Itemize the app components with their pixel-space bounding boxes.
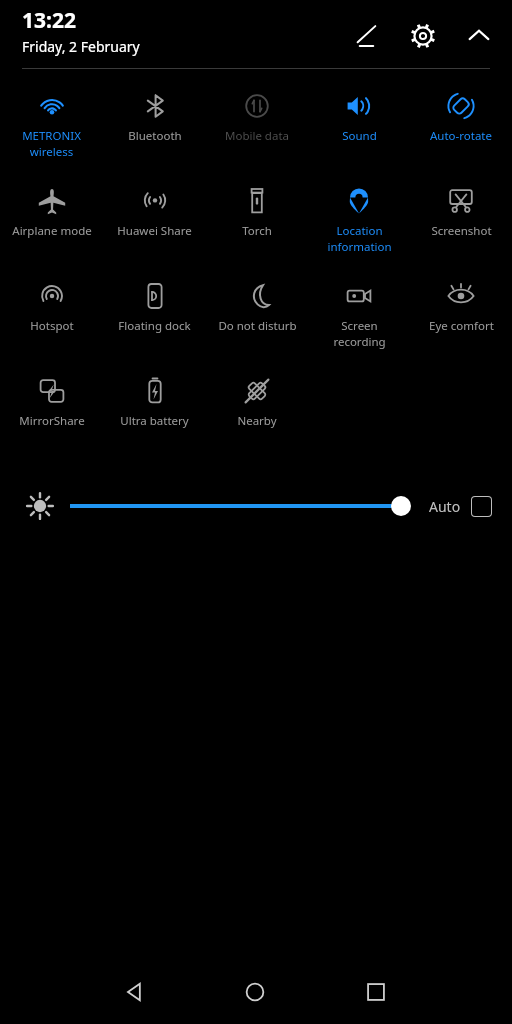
staticText: Auto — [429, 497, 461, 516]
button[interactable]: Home — [227, 964, 283, 1020]
button[interactable]: Auto — [429, 496, 492, 517]
staticText: Auto-rotate — [430, 128, 492, 144]
staticText: Ultra battery — [120, 413, 189, 429]
staticText: Location information — [327, 223, 392, 254]
button[interactable]: Sound — [308, 83, 410, 178]
button[interactable]: Recents — [348, 964, 404, 1020]
button[interactable]: METRONIX wireless — [0, 83, 103, 178]
staticText: Floating dock — [118, 318, 191, 334]
button[interactable]: Ultra battery — [103, 368, 206, 463]
button[interactable]: Screen recording — [308, 273, 410, 368]
button[interactable]: Mobile data — [206, 83, 308, 178]
button[interactable]: Torch — [206, 178, 308, 273]
staticText: MirrorShare — [19, 413, 85, 429]
button[interactable]: Auto-rotate — [410, 83, 512, 178]
staticText: Friday, 2 February — [22, 37, 140, 56]
staticText: Bluetooth — [128, 128, 182, 144]
button[interactable]: MirrorShare — [0, 368, 103, 463]
button[interactable]: Settings — [406, 19, 440, 53]
button[interactable]: Edit — [350, 19, 384, 53]
button[interactable]: Airplane mode — [0, 178, 103, 273]
button[interactable]: Bluetooth — [103, 83, 206, 178]
staticText: Mobile data — [225, 128, 289, 144]
staticText: METRONIX wireless — [22, 128, 81, 159]
button[interactable]: Huawei Share — [103, 178, 206, 273]
button[interactable]: Back — [107, 964, 163, 1020]
button[interactable]: Eye comfort — [410, 273, 512, 368]
button[interactable]: Location information — [308, 178, 410, 273]
button[interactable]: Screenshot — [410, 178, 512, 273]
button[interactable]: Hotspot — [0, 273, 103, 368]
staticText: Hotspot — [30, 318, 74, 334]
button[interactable]: Do not disturb — [206, 273, 308, 368]
button[interactable]: Collapse — [462, 19, 496, 53]
staticText: Airplane mode — [12, 223, 92, 239]
staticText: Eye comfort — [429, 318, 494, 334]
staticText: Screen recording — [333, 318, 386, 349]
button[interactable]: Floating dock — [103, 273, 206, 368]
staticText: Do not disturb — [218, 318, 297, 334]
staticText: Huawei Share — [117, 223, 192, 239]
staticText: Screenshot — [431, 223, 492, 239]
staticText: Torch — [242, 223, 272, 239]
button[interactable]: Nearby — [206, 368, 308, 463]
staticText: Sound — [342, 128, 377, 144]
button[interactable]: Brightness — [20, 486, 60, 526]
staticText: 13:22 — [22, 6, 76, 35]
staticText: Nearby — [237, 413, 277, 429]
button[interactable]: Brightness slider — [70, 486, 413, 526]
